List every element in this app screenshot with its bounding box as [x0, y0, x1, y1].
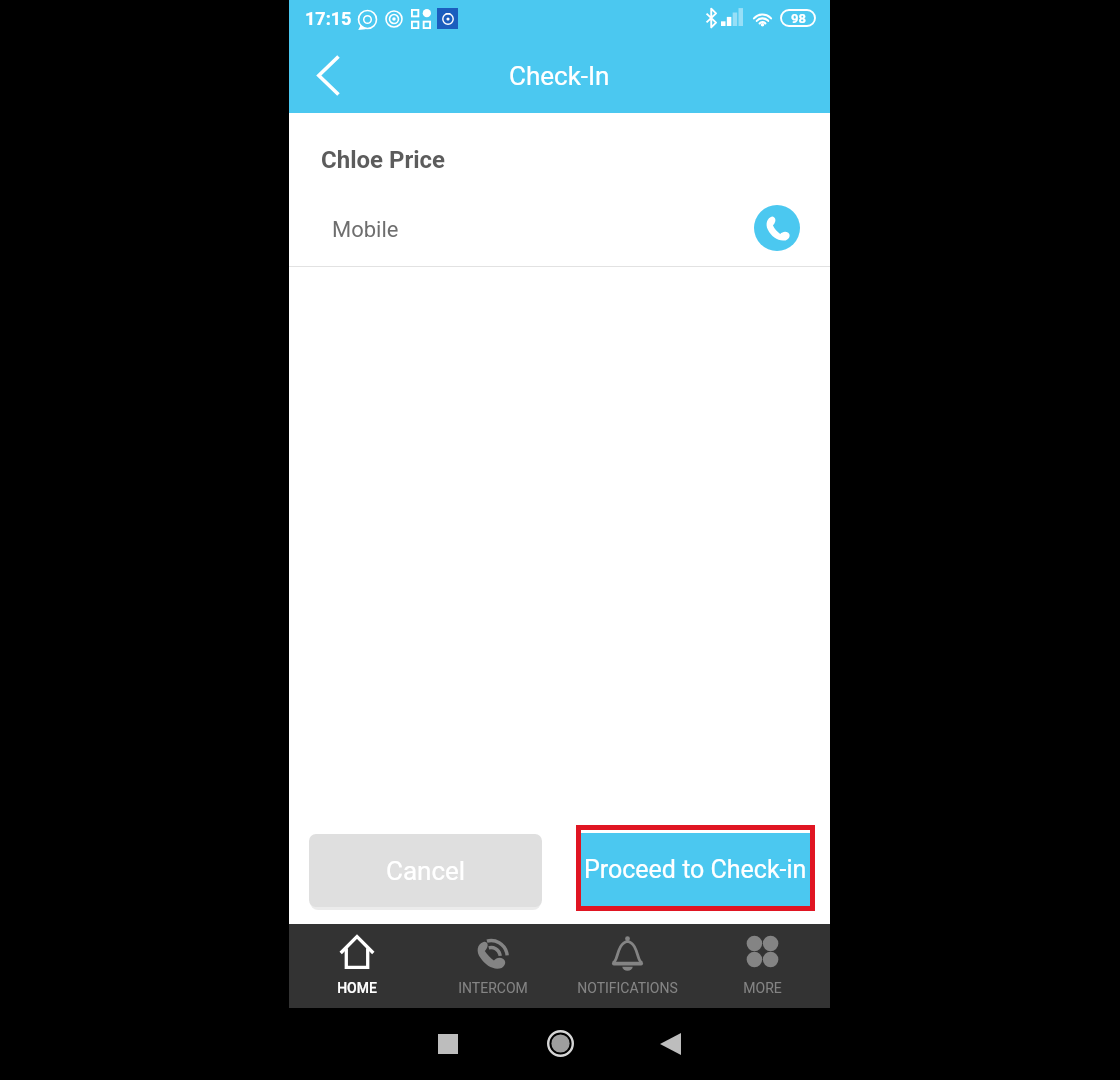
button[interactable]: Call mobile [754, 205, 800, 251]
staticText: Check-In [509, 61, 610, 91]
staticText: 17:15 [305, 8, 352, 29]
button[interactable]: Mobile [289, 198, 830, 258]
staticText: Cancel [386, 856, 466, 886]
staticText: INTERCOM [458, 980, 528, 996]
staticText: Proceed to Check-in [584, 855, 807, 884]
staticText: Chloe Price [321, 146, 446, 174]
button[interactable]: Back [299, 46, 357, 104]
staticText: NOTIFICATIONS [577, 980, 678, 996]
button[interactable]: MORE [695, 924, 830, 1008]
button[interactable]: NOTIFICATIONS [560, 924, 695, 1008]
button[interactable]: Cancel [309, 834, 542, 907]
button[interactable]: Proceed to Check-in [581, 833, 810, 906]
staticText: Mobile [332, 217, 754, 243]
button[interactable]: Back [660, 1033, 681, 1055]
button[interactable]: HOME [289, 924, 425, 1008]
staticText: 98 [791, 11, 806, 26]
staticText: MORE [743, 980, 782, 996]
staticText: HOME [337, 980, 377, 996]
button[interactable]: INTERCOM [425, 924, 560, 1008]
button[interactable]: Home [547, 1030, 574, 1057]
